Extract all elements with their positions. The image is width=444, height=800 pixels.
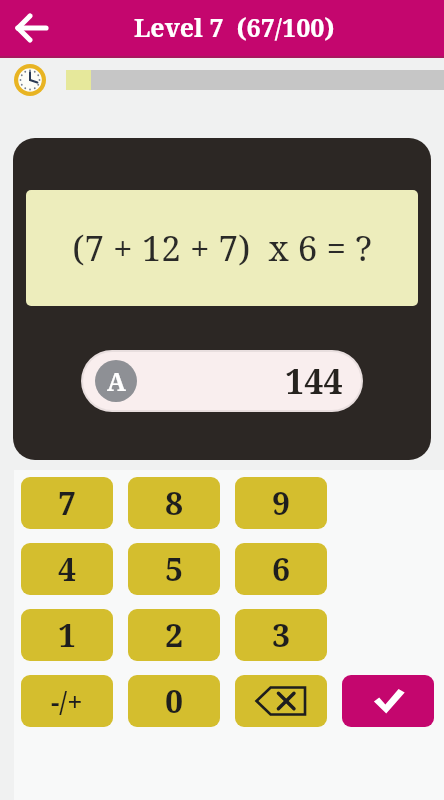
staticText: 2	[165, 613, 184, 657]
staticText: 1	[58, 613, 77, 657]
staticText: 0	[165, 679, 184, 723]
button[interactable]: 4	[21, 543, 113, 595]
button[interactable]: 2	[128, 609, 220, 661]
button[interactable]: 5	[128, 543, 220, 595]
button[interactable]: 6	[235, 543, 327, 595]
button[interactable]: Submit answer	[342, 675, 434, 727]
staticText: 7	[58, 481, 77, 525]
staticText: 4	[58, 547, 77, 591]
staticText: (7 + 12 + 7) x 6 = ?	[72, 224, 372, 272]
button[interactable]: Backspace	[235, 675, 327, 727]
staticText: 8	[165, 481, 184, 525]
button[interactable]: Back	[8, 4, 56, 52]
staticText: 3	[272, 613, 291, 657]
button[interactable]: 8	[128, 477, 220, 529]
button[interactable]: 1	[21, 609, 113, 661]
staticText: 144	[285, 358, 343, 404]
button[interactable]: A	[83, 352, 361, 410]
staticText: A	[107, 364, 126, 398]
button[interactable]: -/+	[21, 675, 113, 727]
staticText: 6	[272, 547, 291, 591]
button[interactable]: 0	[128, 675, 220, 727]
button[interactable]: 7	[21, 477, 113, 529]
button[interactable]: 9	[235, 477, 327, 529]
button[interactable]: 3	[235, 609, 327, 661]
staticText: 5	[165, 547, 184, 591]
staticText: Level 7 (67/100)	[134, 10, 335, 44]
staticText: -/+	[51, 683, 83, 720]
staticText: 9	[272, 481, 291, 525]
